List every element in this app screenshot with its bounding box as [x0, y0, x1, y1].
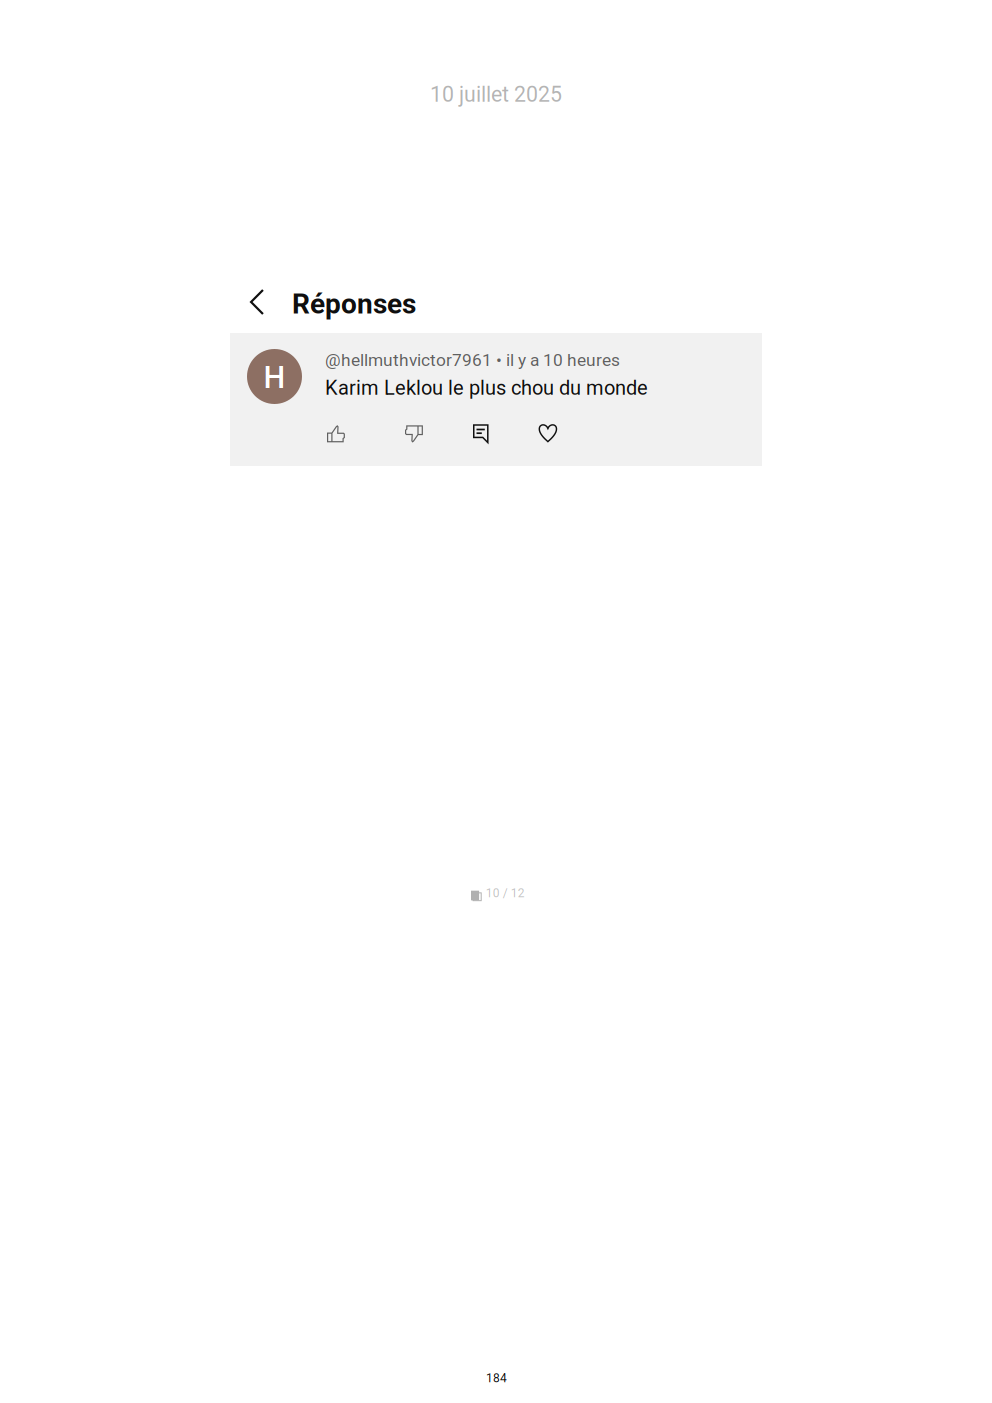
- button[interactable]: @hellmuthvictor7961 • il y a 10 heures: [325, 350, 762, 400]
- button[interactable]: Chaîne de @hellmuthvictor7961: [247, 349, 302, 404]
- button[interactable]: Répondre: [466, 421, 496, 447]
- staticText: Karim Leklou le plus chou du monde: [325, 376, 648, 400]
- button[interactable]: J’aime: [321, 421, 351, 447]
- staticText: H: [263, 359, 285, 395]
- staticText: 184: [486, 1371, 507, 1385]
- staticText: 10 juillet 2025: [430, 82, 562, 107]
- staticText: 10 / 12: [486, 886, 525, 900]
- button[interactable]: Je n’aime pas: [399, 421, 429, 447]
- button[interactable]: Réponses, retour: [242, 280, 774, 324]
- staticText: Réponses: [292, 288, 416, 320]
- button[interactable]: Cœur du créateur: [533, 421, 563, 447]
- staticText: @hellmuthvictor7961 • il y a 10 heures: [325, 350, 620, 370]
